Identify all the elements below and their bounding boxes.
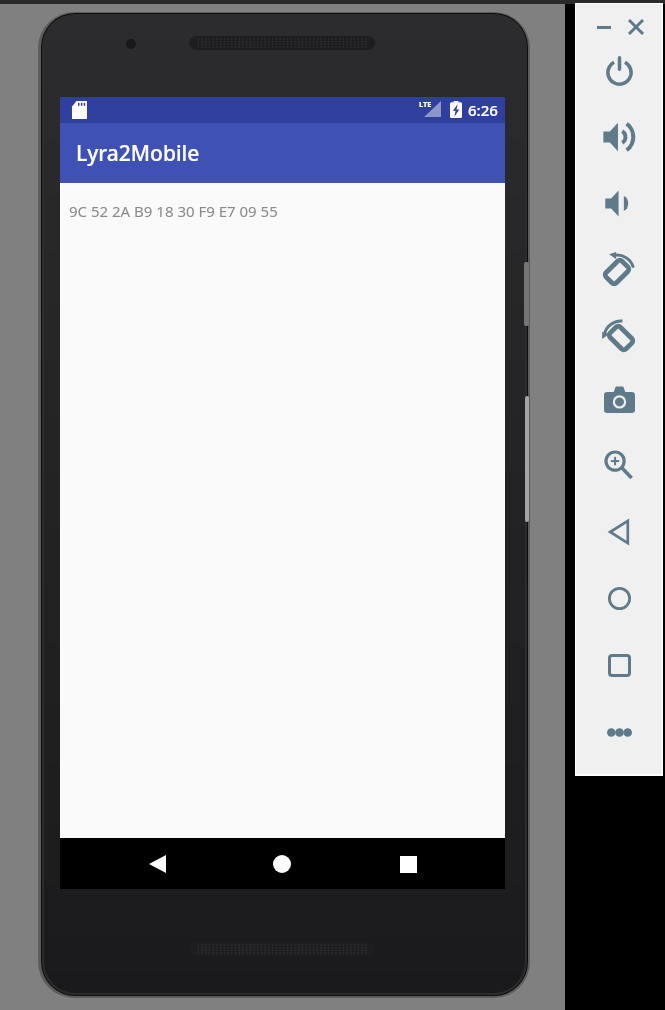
button[interactable]: Back [134, 841, 180, 887]
button[interactable]: Recent apps [385, 841, 431, 887]
button[interactable]: Power [597, 48, 641, 92]
staticText: LTE [419, 99, 432, 109]
button[interactable]: Rotate right [597, 314, 641, 358]
button[interactable]: Lyra2Mobile [60, 123, 505, 183]
button[interactable]: Rotate left [597, 248, 641, 292]
button[interactable]: Take screenshot [597, 377, 641, 421]
button[interactable]: Minimize [586, 9, 622, 45]
staticText: Lyra2Mobile [76, 139, 200, 168]
button[interactable]: Volume up [597, 115, 641, 159]
button[interactable]: Overview [597, 643, 641, 687]
button[interactable]: More [597, 710, 641, 754]
button[interactable]: Home [597, 576, 641, 620]
staticText: 6:26 [468, 100, 498, 120]
button[interactable]: Close [618, 9, 654, 45]
staticText: 9C 52 2A B9 18 30 F9 E7 09 55 [69, 201, 278, 221]
button[interactable]: Volume down [597, 181, 641, 225]
button[interactable]: Home [259, 841, 305, 887]
button[interactable]: Zoom [597, 443, 641, 487]
button[interactable]: Back [597, 510, 641, 554]
